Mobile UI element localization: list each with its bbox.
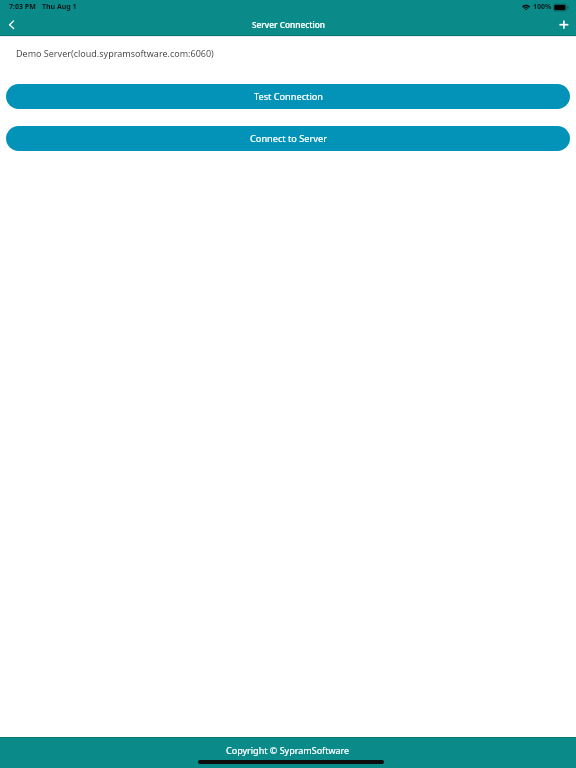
staticText: Connect to Server [250,132,327,145]
button[interactable]: Add [552,14,576,36]
staticText: Copyright © SypramSoftware [226,744,350,756]
staticText: 100% [533,2,552,12]
button[interactable]: Back [0,14,22,36]
staticText: Server Connection [252,19,325,30]
button[interactable]: Test Connection [6,84,570,109]
staticText: Test Connection [254,90,323,103]
button[interactable]: Demo Server(cloud.sypramsoftware.com:606… [0,36,576,72]
staticText: 7:03 PM [9,2,36,12]
staticText: Thu Aug 1 [42,2,77,12]
staticText: Demo Server(cloud.sypramsoftware.com:606… [16,47,214,59]
button[interactable]: Connect to Server [6,126,570,151]
